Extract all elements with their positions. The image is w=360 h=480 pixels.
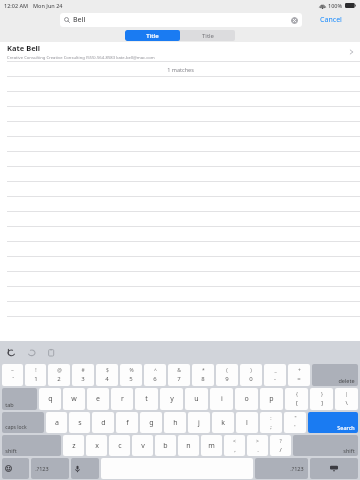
- button[interactable]: y: [160, 388, 183, 410]
- button[interactable]: >: [247, 435, 268, 456]
- button[interactable]: a: [46, 412, 67, 433]
- staticText: ^: [154, 367, 157, 374]
- staticText: m: [208, 441, 215, 451]
- button[interactable]: d: [92, 412, 114, 433]
- button[interactable]: Clear text: [291, 17, 298, 24]
- button[interactable]: :: [260, 412, 282, 433]
- staticText: }: [321, 391, 323, 398]
- button[interactable]: ): [240, 364, 262, 386]
- button[interactable]: shift: [293, 435, 358, 456]
- staticText: ;: [270, 423, 272, 431]
- button[interactable]: *: [192, 364, 214, 386]
- button[interactable]: }: [310, 388, 333, 410]
- button[interactable]: .?123: [255, 458, 308, 479]
- button[interactable]: Undo: [6, 347, 17, 358]
- staticText: <: [233, 438, 236, 445]
- staticText: y: [170, 394, 174, 404]
- button[interactable]: .?123: [31, 458, 69, 479]
- button[interactable]: tab: [2, 388, 37, 410]
- staticText: %: [129, 367, 134, 374]
- staticText: o: [244, 394, 249, 404]
- button[interactable]: |: [335, 388, 358, 410]
- staticText: ": [294, 415, 297, 422]
- button[interactable]: %: [120, 364, 142, 386]
- button[interactable]: b: [155, 435, 176, 456]
- button[interactable]: &: [168, 364, 190, 386]
- button[interactable]: Cancel: [302, 12, 360, 28]
- button[interactable]: Paste: [46, 347, 57, 358]
- button[interactable]: j: [188, 412, 210, 433]
- button[interactable]: shift: [2, 435, 61, 456]
- staticText: t: [145, 394, 148, 404]
- button[interactable]: Title: [125, 30, 180, 41]
- button[interactable]: g: [140, 412, 162, 433]
- button[interactable]: +: [288, 364, 310, 386]
- staticText: `: [12, 375, 14, 383]
- staticText: 3: [81, 375, 85, 383]
- button[interactable]: k: [212, 412, 234, 433]
- button[interactable]: _: [264, 364, 286, 386]
- button[interactable]: i: [210, 388, 233, 410]
- button[interactable]: l: [236, 412, 258, 433]
- staticText: 1: [34, 375, 38, 383]
- staticText: a: [55, 418, 59, 428]
- button[interactable]: Hide keyboard: [310, 458, 358, 479]
- button[interactable]: caps lock: [2, 412, 44, 433]
- staticText: c: [118, 441, 122, 451]
- button[interactable]: {: [285, 388, 308, 410]
- staticText: :: [270, 415, 272, 422]
- button[interactable]: ^: [144, 364, 166, 386]
- button[interactable]: <: [224, 435, 245, 456]
- button[interactable]: z: [63, 435, 84, 456]
- button[interactable]: c: [109, 435, 130, 456]
- button[interactable]: (: [216, 364, 238, 386]
- button[interactable]: Dictation: [71, 458, 99, 479]
- staticText: g: [149, 418, 154, 428]
- button[interactable]: x: [86, 435, 107, 456]
- staticText: ]: [321, 399, 323, 407]
- button[interactable]: !: [25, 364, 46, 386]
- button[interactable]: Bell: [60, 13, 302, 27]
- button[interactable]: ": [284, 412, 306, 433]
- staticText: ': [294, 423, 296, 431]
- button[interactable]: t: [135, 388, 158, 410]
- button[interactable]: q: [39, 388, 61, 410]
- button[interactable]: Search: [308, 412, 358, 433]
- button[interactable]: delete: [312, 364, 358, 386]
- staticText: Bell: [73, 15, 291, 25]
- staticText: 8: [201, 375, 205, 383]
- staticText: Kate Bell: [7, 43, 41, 53]
- staticText: r: [121, 394, 124, 404]
- button[interactable]: r: [111, 388, 133, 410]
- button[interactable]: Kate Bell: [0, 42, 360, 61]
- button[interactable]: v: [132, 435, 153, 456]
- button[interactable]: u: [185, 388, 208, 410]
- button[interactable]: @: [48, 364, 70, 386]
- button[interactable]: ~: [2, 364, 23, 386]
- staticText: x: [95, 441, 99, 451]
- button[interactable]: e: [87, 388, 109, 410]
- button[interactable]: ?: [270, 435, 291, 456]
- button[interactable]: n: [178, 435, 199, 456]
- staticText: 100%: [328, 2, 343, 9]
- staticText: |: [345, 391, 348, 398]
- button[interactable]: Redo: [26, 347, 37, 358]
- button[interactable]: o: [235, 388, 258, 410]
- button[interactable]: w: [63, 388, 85, 410]
- button[interactable]: #: [72, 364, 94, 386]
- button[interactable]: f: [116, 412, 138, 433]
- staticText: 2: [57, 375, 61, 383]
- button[interactable]: $: [96, 364, 118, 386]
- button[interactable]: p: [260, 388, 283, 410]
- staticText: .?123: [35, 465, 49, 472]
- button[interactable]: Emoji: [2, 458, 29, 479]
- button[interactable]: m: [201, 435, 222, 456]
- staticText: 12:02 AM: [4, 2, 29, 9]
- staticText: \: [345, 399, 348, 407]
- button[interactable]: Title: [180, 30, 235, 41]
- button[interactable]: s: [69, 412, 90, 433]
- button[interactable]: h: [164, 412, 186, 433]
- staticText: Cancel: [320, 15, 342, 25]
- staticText: 1 matches: [167, 66, 194, 73]
